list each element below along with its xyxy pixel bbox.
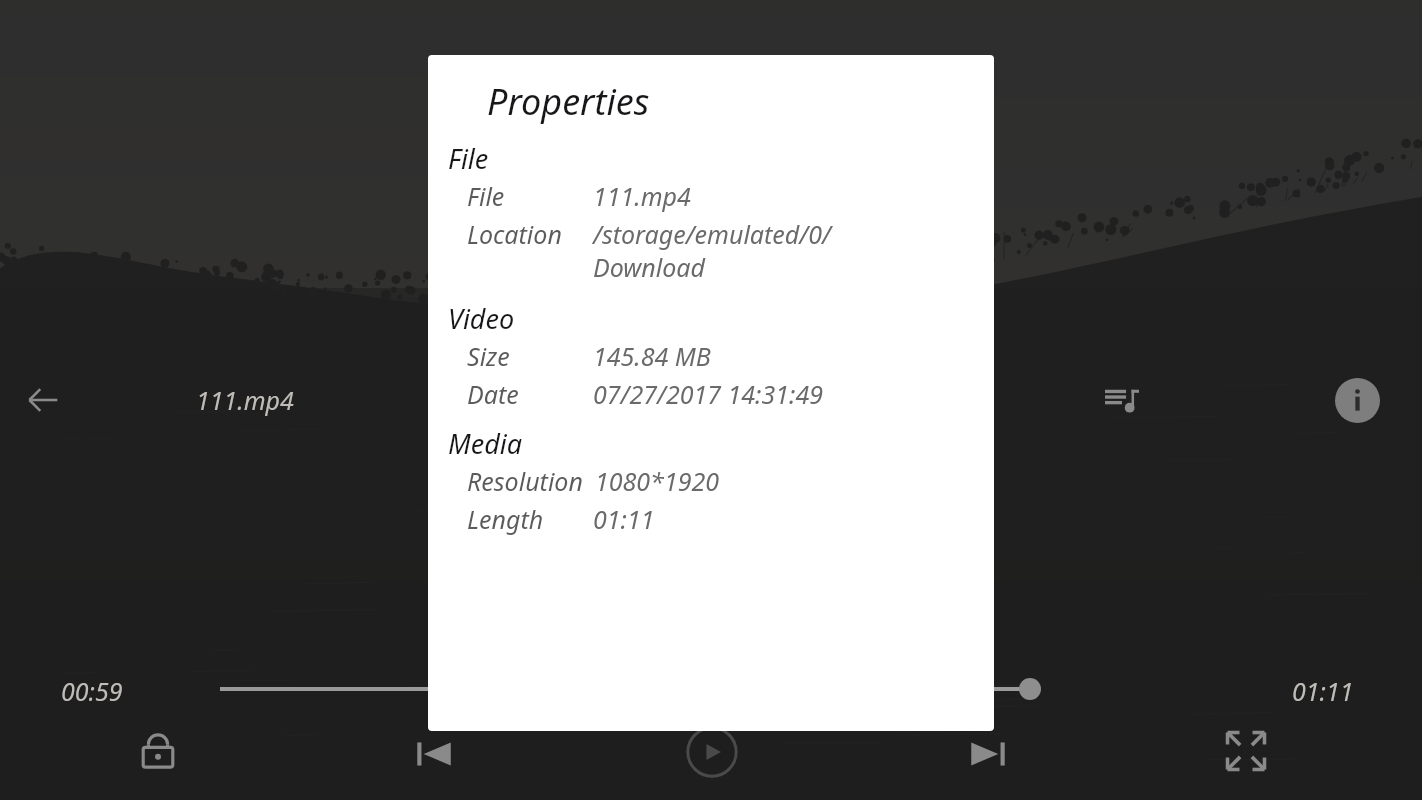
staticText: 145.84 MB [593,339,893,373]
button[interactable]: Back [18,375,68,425]
button[interactable]: Play [682,722,742,782]
staticText: /storage/emulated/0/ Download [593,217,913,284]
button[interactable]: Playlist [1095,373,1149,427]
staticText: File [467,179,593,213]
staticText: Location [467,217,593,251]
button[interactable]: Seek bar [220,687,1025,691]
staticText: Length [467,502,593,536]
staticText: 00:59 [61,674,123,708]
staticText: 111.mp4 [196,383,294,417]
staticText: Video [448,300,515,337]
button[interactable]: Next [960,726,1016,782]
staticText: 1080*1920 [595,464,895,498]
staticText: Media [448,425,523,462]
staticText: 07/27/2017 14:31:49 [593,377,893,411]
button[interactable]: Previous [406,726,462,782]
button[interactable]: Fullscreen [1219,724,1273,778]
staticText: 01:11 [1292,674,1354,708]
button[interactable]: Info [1331,374,1383,426]
staticText: Date [467,377,593,411]
staticText: 111.mp4 [593,179,893,213]
button[interactable]: Lock [130,722,186,778]
staticText: 01:11 [593,502,893,536]
staticText: Properties [487,77,650,126]
staticText: Resolution [467,464,595,498]
staticText: Size [467,339,593,373]
staticText: File [448,140,489,177]
